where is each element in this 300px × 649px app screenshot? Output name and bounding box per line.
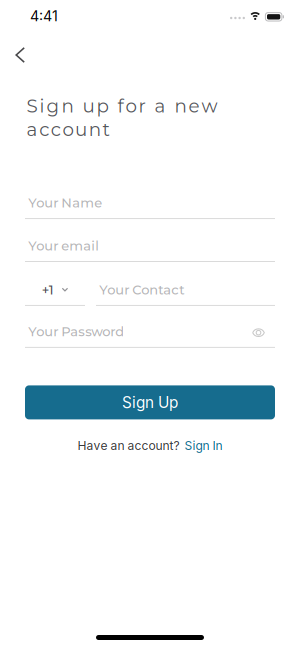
staticText: r: [138, 95, 145, 117]
staticText: t: [102, 118, 109, 141]
staticText: u: [75, 118, 87, 141]
staticText: Your Password: [28, 324, 124, 340]
button[interactable]: Show password: [252, 326, 275, 337]
staticText: Your Contact: [99, 282, 184, 298]
staticText: 4:41: [30, 7, 58, 25]
staticText: o: [125, 95, 136, 117]
button[interactable]: Back: [0, 45, 25, 65]
staticText: Have an account?: [77, 438, 179, 453]
button[interactable]: Sign In: [184, 438, 222, 453]
staticText: n: [61, 95, 73, 117]
staticText: g: [46, 95, 59, 117]
staticText: Your email: [28, 238, 99, 254]
staticText: a: [154, 95, 165, 117]
staticText: e: [188, 95, 199, 117]
staticText: Sign In: [184, 438, 222, 453]
staticText: a: [26, 118, 37, 141]
staticText: Sign Up: [122, 393, 178, 412]
staticText: w: [201, 95, 217, 117]
staticText: n: [89, 118, 101, 141]
staticText: u: [82, 95, 94, 117]
staticText: c: [39, 118, 49, 141]
staticText: +1: [42, 282, 54, 298]
staticText: f: [117, 95, 123, 117]
staticText: n: [174, 95, 186, 117]
button[interactable]: Sign Up: [25, 385, 275, 419]
staticText: c: [51, 118, 61, 141]
staticText: S: [26, 95, 37, 117]
staticText: i: [39, 95, 44, 117]
staticText: p: [96, 95, 108, 117]
button[interactable]: Country code +1: [25, 282, 85, 306]
staticText: o: [62, 118, 73, 141]
staticText: Your Name: [28, 195, 102, 211]
